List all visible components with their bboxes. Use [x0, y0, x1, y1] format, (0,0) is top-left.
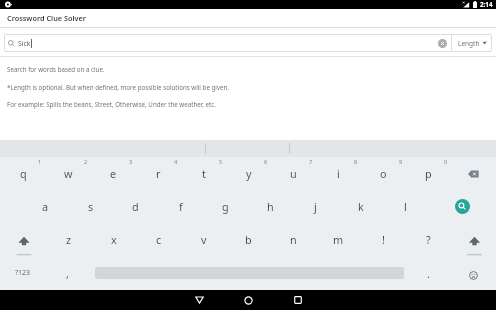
button[interactable]: . [406, 256, 451, 290]
staticText: Search for words based on a clue. [7, 65, 105, 73]
staticText: f [179, 199, 183, 214]
button[interactable]: m [316, 223, 361, 256]
staticText: ?123 [15, 268, 31, 278]
button[interactable]: i [316, 157, 361, 190]
button[interactable]: , [45, 256, 90, 290]
button[interactable] [428, 190, 496, 223]
button[interactable] [0, 223, 46, 256]
staticText: k [358, 199, 364, 214]
staticText: b [245, 232, 252, 247]
button[interactable]: b [226, 223, 271, 256]
staticText: s [88, 199, 94, 214]
staticText: 2:14 [480, 0, 493, 9]
button[interactable]: z [46, 223, 91, 256]
button[interactable]: l [383, 190, 428, 223]
staticText: l [404, 199, 407, 214]
staticText: ? [426, 232, 431, 247]
staticText: 4 [174, 158, 178, 165]
staticText: 7 [309, 158, 313, 165]
staticText: y [246, 166, 252, 181]
staticText: ! [382, 232, 385, 247]
button[interactable]: k [338, 190, 383, 223]
button[interactable]: s [68, 190, 113, 223]
button[interactable]: ? [406, 223, 451, 256]
staticText: p [425, 166, 432, 181]
staticText: z [66, 232, 72, 247]
button[interactable]: ! [361, 223, 406, 256]
button[interactable] [451, 256, 496, 290]
staticText: q [20, 166, 27, 181]
button[interactable] [451, 223, 496, 256]
button[interactable]: u [271, 157, 316, 190]
staticText: 1 [38, 158, 42, 165]
staticText: For example: Spills the beans, Street, O… [7, 100, 216, 108]
staticText: 6 [264, 158, 268, 165]
button[interactable]: a [23, 190, 68, 223]
button[interactable]: c [136, 223, 181, 256]
button[interactable]: j [293, 190, 338, 223]
button[interactable]: h [248, 190, 293, 223]
staticText: , [66, 266, 69, 281]
button[interactable] [438, 39, 447, 48]
button[interactable] [451, 157, 496, 190]
staticText: Sick [18, 39, 31, 48]
button[interactable]: v [181, 223, 226, 256]
staticText: h [267, 199, 274, 214]
button[interactable]: o [361, 157, 406, 190]
staticText: o [380, 166, 387, 181]
button[interactable]: r [136, 157, 181, 190]
staticText: 5 [219, 158, 223, 165]
staticText: Length [458, 39, 480, 48]
button[interactable]: ?123 [0, 256, 45, 290]
staticText: j [314, 199, 317, 214]
staticText: c [156, 232, 162, 247]
staticText: u [290, 166, 297, 181]
button[interactable]: Length [452, 34, 492, 52]
button[interactable]: p [406, 157, 451, 190]
staticText: d [132, 199, 139, 214]
button[interactable]: x [91, 223, 136, 256]
button[interactable]: f [158, 190, 203, 223]
button[interactable]: g [203, 190, 248, 223]
staticText: 0 [444, 158, 448, 165]
staticText: t [202, 166, 206, 181]
button[interactable]: d [113, 190, 158, 223]
staticText: a [42, 199, 49, 214]
staticText: w [64, 166, 73, 181]
button[interactable] [273, 290, 322, 310]
button[interactable]: q [0, 157, 46, 190]
button[interactable]: e [91, 157, 136, 190]
button[interactable]: n [271, 223, 316, 256]
button[interactable]: y [226, 157, 271, 190]
staticText: m [333, 232, 344, 247]
staticText: *Length is optional. But when defined, m… [7, 83, 229, 91]
button[interactable] [224, 290, 273, 310]
button[interactable]: Sick [4, 34, 451, 52]
staticText: 3 [129, 158, 133, 165]
staticText: x [111, 232, 117, 247]
staticText: i [337, 166, 340, 181]
button[interactable] [90, 256, 406, 290]
staticText: e [110, 166, 117, 181]
staticText: r [156, 166, 161, 181]
button[interactable]: w [46, 157, 91, 190]
staticText: v [201, 232, 207, 247]
staticText: g [222, 199, 229, 214]
staticText: Crossword Clue Solver [7, 13, 86, 23]
staticText: 2 [84, 158, 88, 165]
staticText: n [290, 232, 297, 247]
button[interactable] [175, 290, 224, 310]
staticText: 8 [354, 158, 358, 165]
button[interactable]: t [181, 157, 226, 190]
staticText: 9 [399, 158, 403, 165]
staticText: . [427, 266, 430, 281]
